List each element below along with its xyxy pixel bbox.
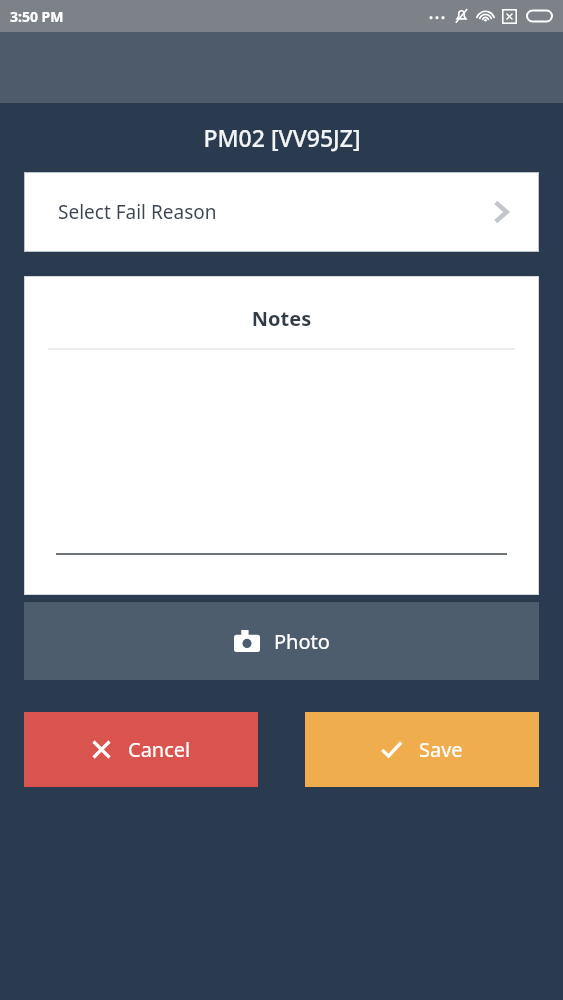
staticText: Notes — [25, 305, 538, 332]
staticText: Save — [419, 736, 463, 763]
button[interactable]: Notes — [25, 277, 538, 594]
staticText: PM02 [VV95JZ] — [203, 122, 361, 153]
button[interactable]: Save — [305, 712, 539, 787]
staticText: 3:50 PM — [10, 7, 64, 26]
button[interactable]: Cancel — [24, 712, 258, 787]
staticText: Select Fail Reason — [58, 199, 217, 225]
button[interactable]: Photo — [24, 602, 539, 680]
staticText: Photo — [274, 628, 330, 655]
staticText: Cancel — [128, 736, 191, 763]
button[interactable]: Select Fail Reason — [25, 173, 538, 251]
